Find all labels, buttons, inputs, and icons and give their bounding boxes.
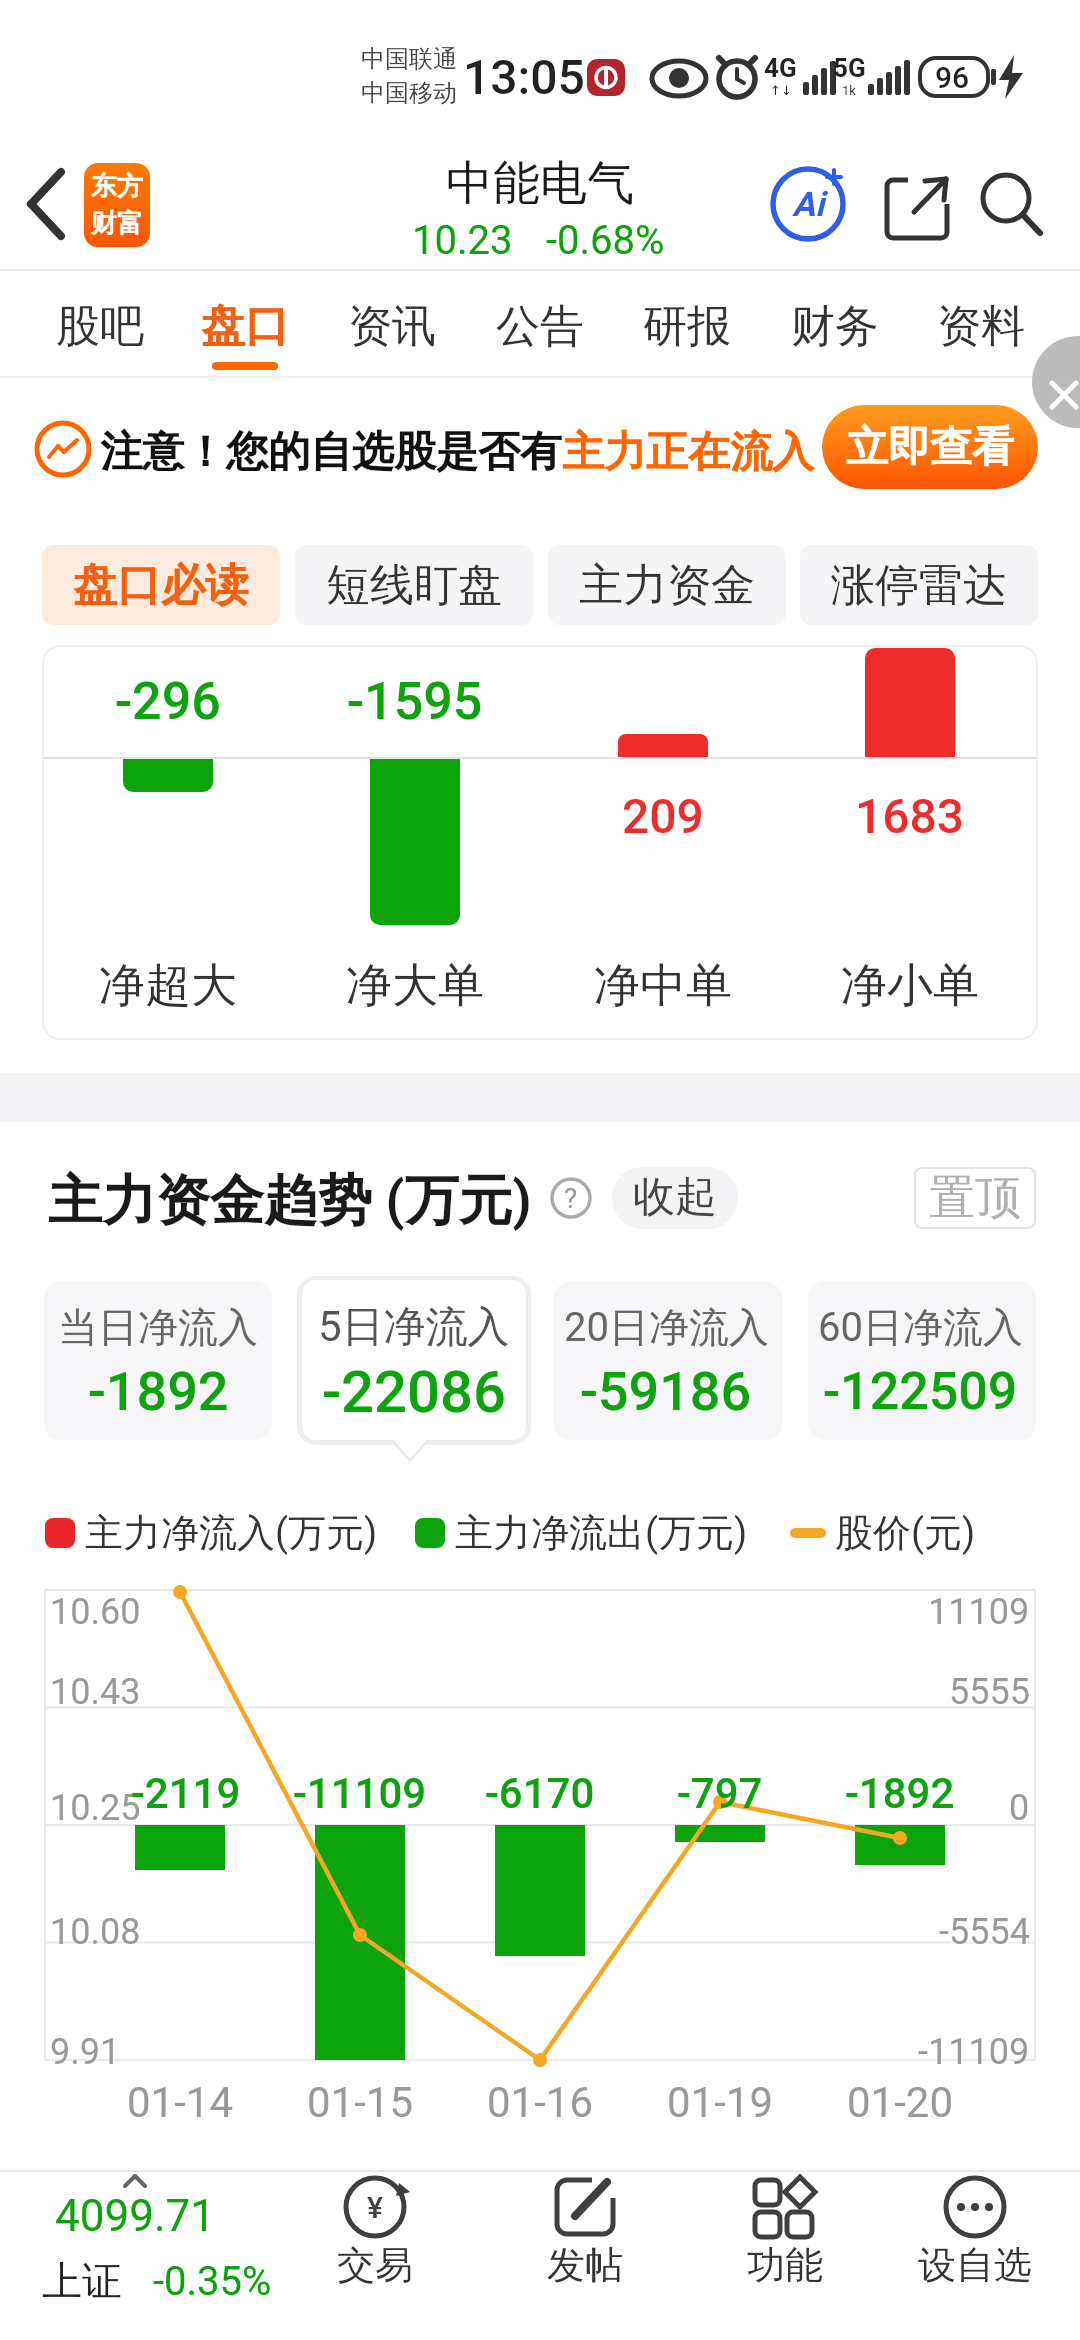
button[interactable]: [42, 545, 280, 625]
staticText: 股价(元): [835, 1509, 976, 1557]
button[interactable]: [880, 172, 956, 244]
button[interactable]: [612, 282, 762, 368]
staticText: 01-19: [667, 2078, 774, 2127]
staticText: 96: [935, 60, 970, 95]
staticText: 中能电气: [446, 154, 634, 213]
staticText: 置顶: [929, 1169, 1021, 1227]
button[interactable]: [972, 168, 1048, 240]
button[interactable]: [1030, 378, 1080, 428]
staticText: 净超大: [99, 957, 237, 1015]
staticText: -296: [115, 671, 221, 732]
button[interactable]: [554, 1282, 782, 1440]
button[interactable]: [710, 2175, 860, 2335]
staticText: 当日净流入: [58, 1302, 258, 1352]
staticText: Ai: [792, 184, 824, 224]
staticText: -797: [677, 1769, 763, 1818]
staticText: 主力资金趋势 (万元): [48, 1167, 532, 1235]
staticText: 10.25: [50, 1787, 141, 1829]
staticText: -1892: [88, 1360, 229, 1423]
button[interactable]: [822, 405, 1038, 489]
button[interactable]: [84, 163, 150, 247]
button[interactable]: [16, 168, 86, 244]
button[interactable]: [170, 282, 320, 368]
button[interactable]: [808, 1282, 1036, 1440]
staticText: 10.60: [50, 1591, 141, 1633]
staticText: 01-20: [847, 2078, 954, 2127]
staticText: 东方: [91, 170, 143, 203]
button[interactable]: [317, 282, 467, 368]
staticText: 注意！您的自选股是否有: [100, 426, 562, 479]
button[interactable]: [914, 1167, 1036, 1229]
button[interactable]: [300, 2175, 450, 2335]
staticText: 主力净流入(万元): [85, 1509, 378, 1557]
staticText: 5G: [833, 53, 866, 83]
button[interactable]: [295, 545, 533, 625]
staticText: 4099.71: [55, 2190, 215, 2242]
staticText: 净中单: [594, 957, 732, 1015]
staticText: 10.23: [412, 217, 513, 264]
staticText: -0.35%: [153, 2258, 272, 2305]
staticText: ¥: [367, 2190, 383, 2225]
staticText: 中国移动: [361, 78, 457, 108]
button[interactable]: [20, 2175, 270, 2335]
button[interactable]: [25, 282, 175, 368]
staticText: 股吧: [56, 299, 144, 354]
staticText: 13:05: [463, 49, 585, 105]
staticText: 01-16: [487, 2078, 594, 2127]
staticText: ?: [564, 1182, 578, 1215]
staticText: 设自选: [918, 2241, 1032, 2289]
staticText: 短线盯盘: [326, 558, 502, 613]
staticText: 10.43: [50, 1671, 141, 1713]
button[interactable]: [800, 545, 1038, 625]
button[interactable]: [44, 1282, 272, 1440]
staticText: 11109: [928, 1591, 1030, 1633]
staticText: 9.91: [50, 2031, 121, 2073]
staticText: 盘口: [201, 299, 289, 354]
staticText: 10.08: [50, 1911, 141, 1953]
button[interactable]: [760, 282, 910, 368]
button[interactable]: [510, 2175, 660, 2335]
staticText: 涨停雷达: [831, 558, 1007, 613]
staticText: 功能: [747, 2241, 823, 2289]
staticText: 主力正在流入: [562, 426, 814, 479]
staticText: -11109: [293, 1769, 427, 1818]
staticText: 1k: [842, 83, 856, 98]
staticText: 交易: [337, 2241, 413, 2289]
button[interactable]: [465, 282, 615, 368]
staticText: -0.68%: [546, 217, 665, 264]
staticText: 资料: [937, 299, 1025, 354]
staticText: -1892: [845, 1769, 955, 1818]
staticText: 5555: [949, 1671, 1030, 1713]
staticText: 01-14: [127, 2078, 234, 2127]
button[interactable]: [300, 1278, 528, 1442]
staticText: 净小单: [841, 957, 979, 1015]
button[interactable]: [548, 545, 786, 625]
staticText: 公告: [496, 299, 584, 354]
staticText: 净大单: [346, 957, 484, 1015]
staticText: 60日净流入: [818, 1302, 1023, 1352]
button[interactable]: [612, 1167, 738, 1229]
staticText: 收起: [633, 1171, 717, 1224]
staticText: -22086: [322, 1358, 506, 1426]
button[interactable]: [900, 2175, 1050, 2335]
staticText: 发帖: [547, 2241, 623, 2289]
staticText: -11109: [918, 2031, 1030, 2073]
staticText: 财富: [91, 207, 143, 240]
button[interactable]: [36, 410, 816, 490]
staticText: -59186: [580, 1360, 752, 1423]
staticText: 立即查看: [846, 421, 1014, 474]
staticText: 主力资金: [579, 558, 755, 613]
staticText: -122509: [823, 1361, 1018, 1422]
staticText: 主力净流出(万元): [455, 1509, 748, 1557]
staticText: 研报: [643, 299, 731, 354]
staticText: -1595: [347, 671, 483, 732]
staticText: 01-15: [307, 2078, 414, 2127]
staticText: 上证: [42, 2256, 122, 2306]
staticText: 4G: [764, 53, 797, 83]
staticText: 0: [1009, 1787, 1030, 1829]
staticText: ↑↓: [770, 83, 792, 98]
button[interactable]: [772, 168, 844, 240]
staticText: 资讯: [348, 299, 436, 354]
staticText: 盘口必读: [73, 558, 249, 613]
button[interactable]: [906, 282, 1056, 368]
